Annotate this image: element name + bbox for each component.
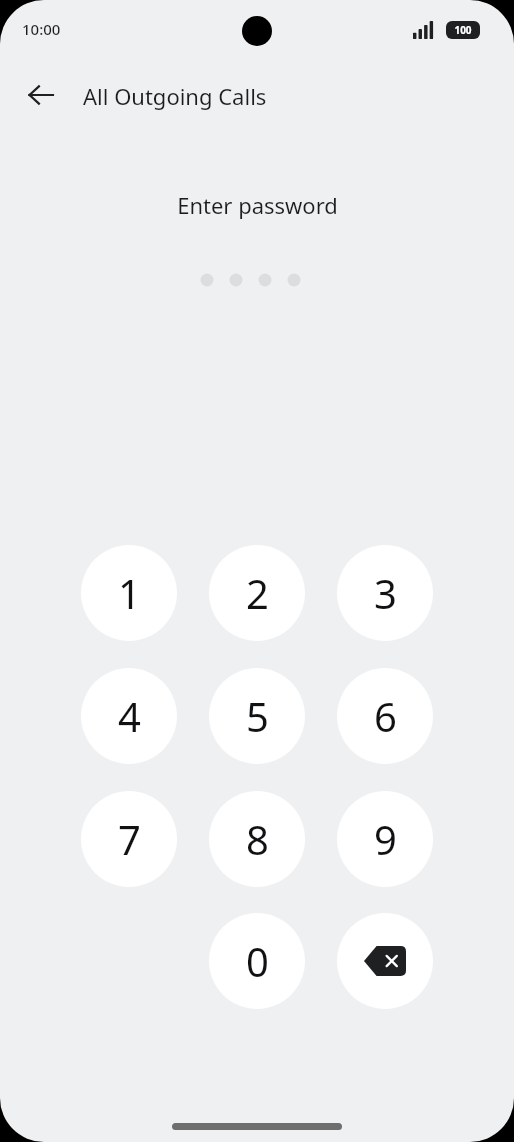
button[interactable]: 9 xyxy=(337,791,433,887)
button[interactable]: Delete xyxy=(337,913,433,1009)
staticText: 8 xyxy=(246,812,269,866)
staticText: 3 xyxy=(374,566,397,620)
button[interactable]: 7 xyxy=(81,791,177,887)
staticText: 10:00 xyxy=(22,19,61,39)
button[interactable]: 4 xyxy=(81,668,177,764)
button[interactable]: 0 xyxy=(209,913,305,1009)
staticText: 4 xyxy=(118,689,141,743)
staticText: 9 xyxy=(374,812,397,866)
staticText: 7 xyxy=(118,812,141,866)
button[interactable]: 6 xyxy=(337,668,433,764)
staticText: 1 xyxy=(118,566,141,620)
button[interactable]: 5 xyxy=(209,668,305,764)
button[interactable]: 1 xyxy=(81,545,177,641)
staticText: 100 xyxy=(454,23,472,37)
staticText: 2 xyxy=(246,566,269,620)
staticText: 0 xyxy=(246,934,269,988)
button[interactable]: 8 xyxy=(209,791,305,887)
button[interactable]: 3 xyxy=(337,545,433,641)
button[interactable]: 2 xyxy=(209,545,305,641)
staticText: All Outgoing Calls xyxy=(83,81,267,111)
staticText: 6 xyxy=(374,689,397,743)
staticText: Enter password xyxy=(177,190,338,220)
staticText: 5 xyxy=(246,689,269,743)
button[interactable]: Back xyxy=(17,71,65,119)
